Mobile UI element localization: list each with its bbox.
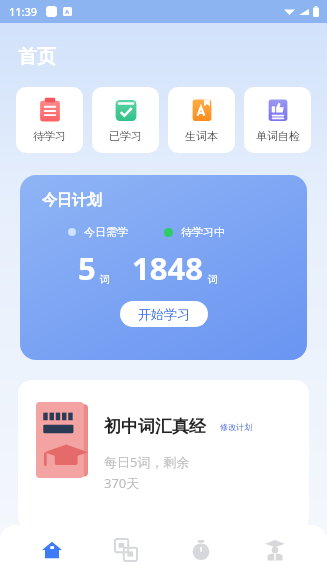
button[interactable]: 开始学习 xyxy=(120,301,208,327)
staticText: 11:39 xyxy=(9,4,38,19)
staticText: 待学习 xyxy=(33,129,66,143)
staticText: 开始学习 xyxy=(138,306,190,322)
staticText: 370天 xyxy=(104,474,140,492)
button[interactable]: Profile xyxy=(253,539,297,581)
staticText: A xyxy=(65,8,70,16)
staticText: 初中词汇真经 xyxy=(104,416,206,437)
button[interactable]: 待学习 xyxy=(16,87,83,153)
button[interactable]: 已学习 xyxy=(92,87,159,153)
staticText: 词 xyxy=(208,273,218,286)
button[interactable]: Home xyxy=(30,539,74,581)
staticText: 今日计划 xyxy=(42,191,102,210)
button[interactable]: 初中词汇真经 xyxy=(18,380,309,530)
staticText: 已学习 xyxy=(109,129,142,143)
button[interactable]: Timer xyxy=(179,539,223,581)
staticText: 词 xyxy=(100,273,110,286)
button[interactable]: Translate xyxy=(104,539,148,581)
button[interactable]: 单词自检 xyxy=(244,87,311,153)
staticText: 1848 xyxy=(132,247,203,289)
button[interactable]: 今日计划 xyxy=(20,175,307,360)
button[interactable]: 修改计划 xyxy=(213,420,259,434)
staticText: 待学习中 xyxy=(181,225,225,239)
staticText: 修改计划 xyxy=(220,422,252,432)
staticText: 每日5词，剩余 xyxy=(104,453,190,471)
staticText: 首页 xyxy=(18,45,56,69)
staticText: 5 xyxy=(78,247,96,289)
button[interactable]: 生词本 xyxy=(168,87,235,153)
staticText: 单词自检 xyxy=(256,129,300,143)
staticText: 生词本 xyxy=(185,129,218,143)
staticText: 今日需学 xyxy=(84,225,128,239)
